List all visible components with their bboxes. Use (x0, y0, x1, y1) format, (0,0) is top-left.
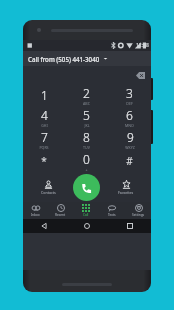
staticText: Contacts (41, 190, 56, 195)
button[interactable]: Contacts (23, 172, 73, 202)
button[interactable]: 9 (108, 128, 151, 150)
staticText: Call (83, 213, 89, 217)
button[interactable]: 5 (65, 106, 108, 128)
staticText: MNO (125, 123, 134, 128)
staticText: * (41, 154, 47, 168)
button[interactable]: Inbox (23, 202, 48, 219)
staticText: + (85, 167, 88, 172)
staticText: 8 (83, 129, 90, 145)
staticText: 2 (83, 85, 90, 101)
button[interactable]: 1 (23, 84, 65, 106)
button[interactable]: Home (65, 219, 108, 233)
staticText: 3 (126, 85, 133, 101)
staticText: 0 (83, 151, 90, 167)
button[interactable]: * (23, 150, 65, 172)
button[interactable]: 4 (23, 106, 65, 128)
button[interactable]: 2 (65, 84, 108, 106)
button[interactable]: 7 (23, 128, 65, 150)
staticText: Inbox (31, 213, 40, 217)
staticText: GHI (41, 123, 48, 128)
button[interactable]: Recent (48, 202, 73, 219)
staticText: 12:08 (136, 42, 149, 49)
staticText: Favorites (118, 190, 134, 195)
staticText: 4 (41, 107, 48, 123)
staticText: 7 (41, 129, 48, 145)
button[interactable]: Back (23, 219, 65, 233)
staticText: Settings (132, 213, 145, 217)
button[interactable]: Call (73, 202, 99, 219)
staticText: 6 (126, 107, 133, 123)
button[interactable]: 3 (108, 84, 151, 106)
staticText: ABC (83, 101, 90, 106)
button[interactable]: Settings (125, 202, 151, 219)
staticText: Texts (108, 213, 116, 217)
button[interactable]: Call from (505) 441-3040 (23, 51, 151, 66)
button[interactable]: Backspace (136, 72, 145, 79)
staticText: TUV (83, 145, 90, 150)
button[interactable]: Favorites (100, 172, 151, 202)
staticText: Call from (505) 441-3040 (28, 55, 100, 63)
staticText: # (126, 154, 133, 168)
button[interactable]: Texts (99, 202, 125, 219)
staticText: 9 (127, 129, 134, 145)
staticText: Recent (55, 213, 66, 217)
button[interactable]: Call (73, 174, 100, 201)
button[interactable]: Recents (108, 219, 151, 233)
staticText: WXYZ (125, 145, 135, 150)
button[interactable]: 0 (65, 150, 108, 172)
button[interactable]: # (108, 150, 151, 172)
staticText: 5 (83, 107, 90, 123)
button[interactable]: 6 (108, 106, 151, 128)
staticText: JKL (84, 123, 90, 128)
staticText: PQRS (39, 145, 49, 150)
staticText: 1 (41, 87, 48, 103)
staticText: DEF (126, 101, 133, 106)
button[interactable]: 8 (65, 128, 108, 150)
